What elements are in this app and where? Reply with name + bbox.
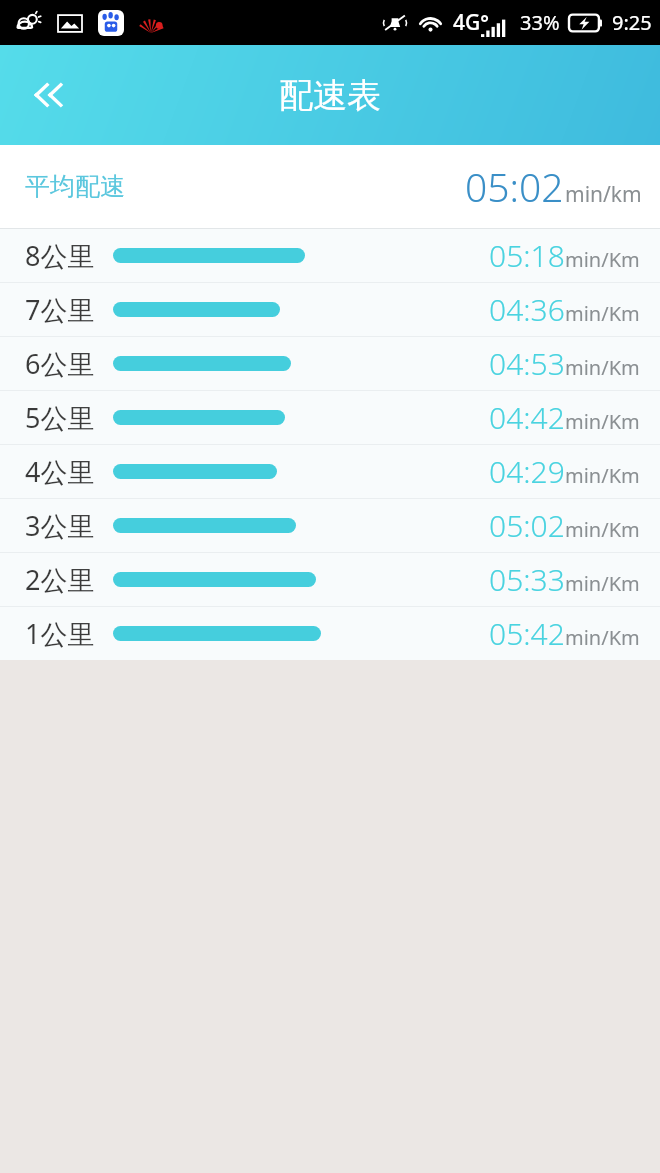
staticText: 4公里 (25, 453, 95, 490)
staticText: 05:42 (489, 613, 565, 654)
button[interactable]: 8公里 (0, 229, 660, 282)
button[interactable]: 4公里 (0, 445, 660, 498)
staticText: 04:29 (489, 451, 565, 492)
staticText: 33% (520, 9, 560, 36)
staticText: 4G (453, 8, 481, 37)
button[interactable]: Back (16, 61, 84, 129)
staticText: min/Km (565, 246, 640, 273)
staticText: 2公里 (25, 561, 95, 598)
staticText: 05:18 (489, 235, 565, 276)
button[interactable]: 3公里 (0, 499, 660, 552)
staticText: min/Km (565, 516, 640, 543)
staticText: min/km (565, 180, 642, 209)
staticText: 7公里 (25, 291, 95, 328)
staticText: min/Km (565, 624, 640, 651)
staticText: 平均配速 (25, 171, 125, 202)
staticText: 6公里 (25, 345, 95, 382)
staticText: min/Km (565, 408, 640, 435)
staticText: min/Km (565, 300, 640, 327)
staticText: 05:02 (489, 505, 565, 546)
staticText: 8公里 (25, 237, 95, 274)
staticText: 05:33 (489, 559, 565, 600)
staticText: 配速表 (279, 74, 381, 117)
staticText: min/Km (565, 570, 640, 597)
staticText: 04:36 (489, 289, 565, 330)
staticText: min/Km (565, 462, 640, 489)
staticText: 05:02 (465, 160, 564, 213)
staticText: 04:42 (489, 397, 565, 438)
staticText: 5公里 (25, 399, 95, 436)
button[interactable]: 5公里 (0, 391, 660, 444)
staticText: min/Km (565, 354, 640, 381)
staticText: 1公里 (25, 615, 95, 652)
staticText: 04:53 (489, 343, 565, 384)
staticText: 9:25 (612, 9, 652, 36)
button[interactable]: 6公里 (0, 337, 660, 390)
button[interactable]: 7公里 (0, 283, 660, 336)
button[interactable]: 1公里 (0, 607, 660, 660)
staticText: 3公里 (25, 507, 95, 544)
button[interactable]: 2公里 (0, 553, 660, 606)
button[interactable]: 平均配速 (0, 145, 660, 228)
